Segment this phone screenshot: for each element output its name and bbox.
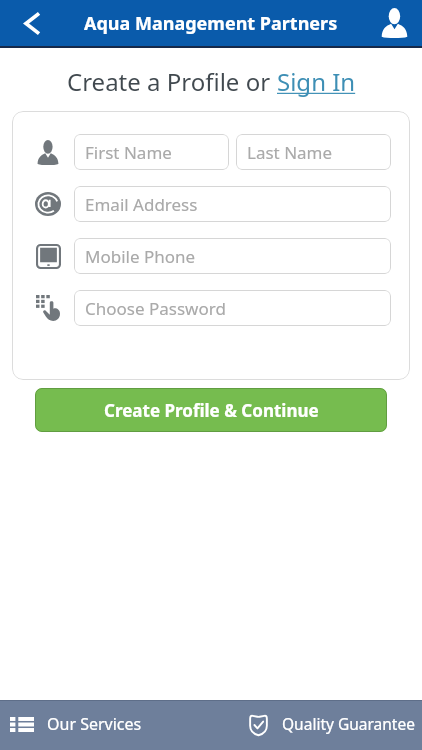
staticText: Mobile Phone xyxy=(85,245,196,268)
staticText: Create a Profile or xyxy=(67,65,277,98)
button[interactable]: Email Address xyxy=(74,186,391,222)
staticText: Aqua Management Partners xyxy=(84,11,338,36)
button[interactable]: Last Name xyxy=(236,134,391,170)
button[interactable]: Back xyxy=(0,0,46,46)
staticText: Last Name xyxy=(247,141,333,164)
button[interactable]: Our Services xyxy=(0,701,249,750)
button[interactable]: Create Profile & Continue xyxy=(35,388,387,432)
button[interactable]: Sign In xyxy=(277,65,356,98)
staticText: Create Profile & Continue xyxy=(104,399,319,422)
staticText: Choose Password xyxy=(85,297,226,320)
staticText: Email Address xyxy=(85,193,198,216)
button[interactable]: Choose Password xyxy=(74,290,391,326)
button[interactable]: First Name xyxy=(74,134,229,170)
button[interactable]: Mobile Phone xyxy=(74,238,391,274)
staticText: Our Services xyxy=(47,713,142,735)
staticText: First Name xyxy=(85,141,172,164)
button[interactable]: Account xyxy=(376,0,422,46)
staticText: Quality Guarantee xyxy=(282,713,415,734)
staticText: Sign In xyxy=(277,65,356,98)
button[interactable]: Quality Guarantee xyxy=(249,701,422,750)
